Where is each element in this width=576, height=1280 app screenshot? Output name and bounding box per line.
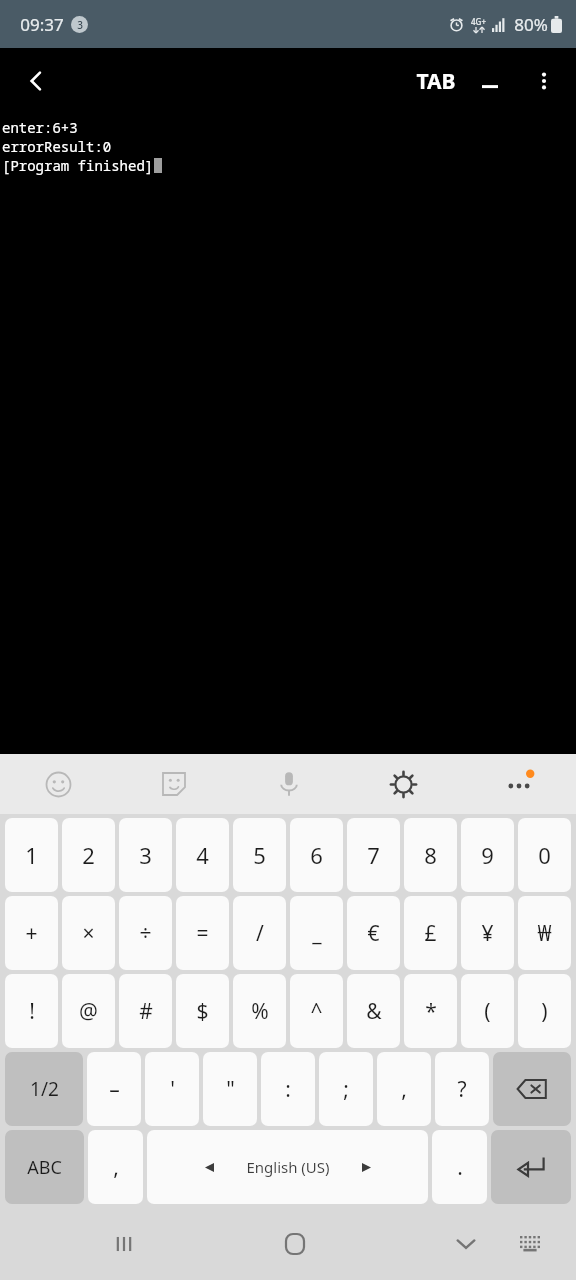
button[interactable]: , xyxy=(377,1052,431,1126)
staticText: " xyxy=(226,1075,235,1104)
button[interactable]: / xyxy=(233,896,286,970)
staticText: ¥ xyxy=(481,919,494,948)
staticText: 80% xyxy=(514,13,548,36)
button[interactable]: $ xyxy=(176,974,229,1048)
staticText: 8 xyxy=(424,840,437,870)
staticText: 2 xyxy=(82,840,95,870)
button[interactable]: 9 xyxy=(461,818,514,892)
button[interactable]: 0 xyxy=(518,818,571,892)
button[interactable]: ₩ xyxy=(518,896,571,970)
button[interactable]: Emoji xyxy=(0,754,116,814)
button[interactable]: 2 xyxy=(62,818,115,892)
staticText: × xyxy=(82,919,95,948)
staticText: € xyxy=(367,919,380,948)
staticText: + xyxy=(25,919,38,948)
staticText: ' xyxy=(170,1075,175,1104)
button[interactable]: = xyxy=(176,896,229,970)
button[interactable]: More keyboard options xyxy=(461,754,576,814)
staticText: ! xyxy=(29,997,35,1026)
button[interactable]: & xyxy=(347,974,400,1048)
button[interactable]: Voice input xyxy=(231,754,346,814)
button[interactable]: ? xyxy=(435,1052,489,1126)
button[interactable]: Hide keyboard xyxy=(434,1212,498,1276)
staticText: * xyxy=(425,997,437,1026)
button[interactable]: 5 xyxy=(233,818,286,892)
button[interactable]: . xyxy=(432,1130,487,1204)
button[interactable]: Change keyboard xyxy=(498,1212,562,1276)
button[interactable]: ; xyxy=(319,1052,373,1126)
button[interactable]: ^ xyxy=(290,974,343,1048)
button[interactable]: 6 xyxy=(290,818,343,892)
staticText: 1 xyxy=(25,840,38,870)
button[interactable]: ÷ xyxy=(119,896,172,970)
staticText: = xyxy=(196,919,209,948)
staticText: @ xyxy=(79,997,98,1026)
staticText: 3 xyxy=(139,840,152,870)
staticText: ( xyxy=(484,997,491,1026)
button[interactable]: TAB xyxy=(410,53,462,109)
button[interactable]: * xyxy=(404,974,457,1048)
button[interactable]: Recent apps xyxy=(92,1212,156,1276)
staticText: ; xyxy=(343,1075,349,1104)
button[interactable]: Stickers xyxy=(116,754,231,814)
staticText: ABC xyxy=(27,1155,62,1180)
button[interactable]: More options xyxy=(518,55,570,107)
button[interactable]: English (US) xyxy=(147,1130,428,1204)
staticText: 1/2 xyxy=(30,1076,59,1102)
button[interactable]: ! xyxy=(5,974,58,1048)
staticText: enter:6+3 xyxy=(2,118,78,137)
staticText: 5 xyxy=(253,840,266,870)
button[interactable]: € xyxy=(347,896,400,970)
staticText: # xyxy=(139,997,153,1026)
staticText: [Program finished] xyxy=(2,156,154,175)
staticText: 7 xyxy=(367,840,380,870)
button[interactable]: Minimize xyxy=(462,53,518,109)
button[interactable]: £ xyxy=(404,896,457,970)
button[interactable]: ( xyxy=(461,974,514,1048)
staticText: _ xyxy=(312,919,322,948)
button[interactable]: ¥ xyxy=(461,896,514,970)
button[interactable]: Home xyxy=(263,1212,327,1276)
button[interactable]: × xyxy=(62,896,115,970)
button[interactable]: 4 xyxy=(176,818,229,892)
staticText: : xyxy=(285,1075,291,1104)
button[interactable]: 1 xyxy=(5,818,58,892)
staticText: ^ xyxy=(310,997,323,1026)
staticText: – xyxy=(109,1075,120,1104)
staticText: TAB xyxy=(416,67,456,96)
button[interactable]: + xyxy=(5,896,58,970)
button[interactable]: _ xyxy=(290,896,343,970)
staticText: 4G+ xyxy=(471,16,486,27)
button[interactable]: 7 xyxy=(347,818,400,892)
staticText: ? xyxy=(457,1075,467,1104)
button[interactable]: ABC xyxy=(5,1130,84,1204)
staticText: , xyxy=(113,1153,119,1182)
button[interactable]: – xyxy=(87,1052,141,1126)
staticText: ÷ xyxy=(139,919,152,948)
button[interactable]: # xyxy=(119,974,172,1048)
button[interactable]: , xyxy=(88,1130,143,1204)
button[interactable]: Backspace xyxy=(493,1052,571,1126)
button[interactable]: ' xyxy=(145,1052,199,1126)
staticText: 9 xyxy=(481,840,494,870)
button[interactable]: 8 xyxy=(404,818,457,892)
button[interactable]: % xyxy=(233,974,286,1048)
button[interactable]: Enter xyxy=(491,1130,571,1204)
staticText: & xyxy=(366,997,382,1026)
staticText: English (US) xyxy=(246,1157,330,1177)
button[interactable]: Keyboard settings xyxy=(346,754,461,814)
staticText: . xyxy=(457,1153,463,1182)
staticText: / xyxy=(256,919,264,948)
button[interactable]: " xyxy=(203,1052,257,1126)
staticText: 3 xyxy=(77,18,83,32)
button[interactable]: @ xyxy=(62,974,115,1048)
staticText: errorResult:0 xyxy=(2,137,112,156)
staticText: £ xyxy=(424,919,437,948)
button[interactable]: 3 xyxy=(119,818,172,892)
staticText: $ xyxy=(196,997,209,1026)
button[interactable]: 1/2 xyxy=(5,1052,83,1126)
button[interactable]: Back xyxy=(8,53,64,109)
staticText: 4 xyxy=(196,840,209,870)
button[interactable]: ) xyxy=(518,974,571,1048)
button[interactable]: : xyxy=(261,1052,315,1126)
